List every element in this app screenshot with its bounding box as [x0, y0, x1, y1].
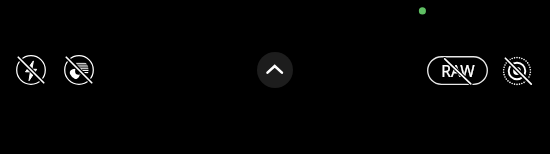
- button[interactable]: Flash off: [14, 53, 48, 87]
- staticText: RAW: [441, 60, 475, 81]
- button[interactable]: Show more settings: [257, 52, 293, 88]
- button[interactable]: Motion off: [62, 53, 96, 87]
- button[interactable]: Timer off: [500, 54, 534, 88]
- button[interactable]: RAW: [427, 56, 488, 85]
